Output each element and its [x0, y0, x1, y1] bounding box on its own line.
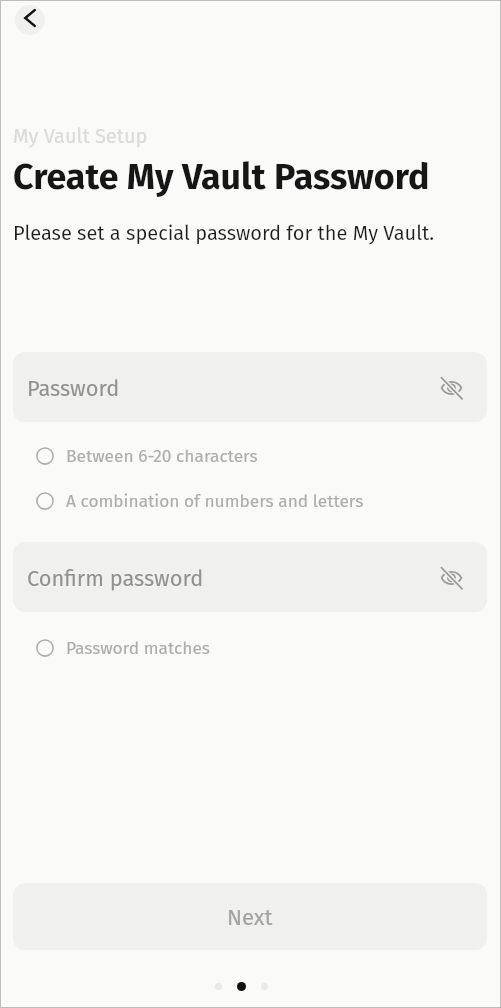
staticText: Next — [227, 904, 273, 930]
button[interactable]: Password matches — [13, 636, 487, 660]
staticText: Create My Vault Password — [13, 156, 430, 199]
staticText: Please set a special password for the My… — [13, 221, 435, 245]
staticText: My Vault Setup — [13, 124, 148, 148]
staticText: A combination of numbers and letters — [66, 491, 364, 512]
button[interactable]: Between 6-20 characters — [13, 444, 487, 468]
staticText: Between 6-20 characters — [66, 446, 258, 467]
button[interactable]: Show password — [435, 561, 467, 593]
button[interactable]: Show password — [435, 371, 467, 403]
button[interactable]: Confirm password — [13, 542, 487, 612]
button[interactable]: Back — [15, 5, 45, 35]
staticText: Password matches — [66, 638, 210, 659]
staticText: Confirm password — [27, 566, 204, 592]
button[interactable]: Password — [13, 352, 487, 422]
button[interactable]: A combination of numbers and letters — [13, 489, 487, 513]
staticText: Password — [27, 376, 120, 402]
button[interactable]: Next — [13, 883, 487, 950]
